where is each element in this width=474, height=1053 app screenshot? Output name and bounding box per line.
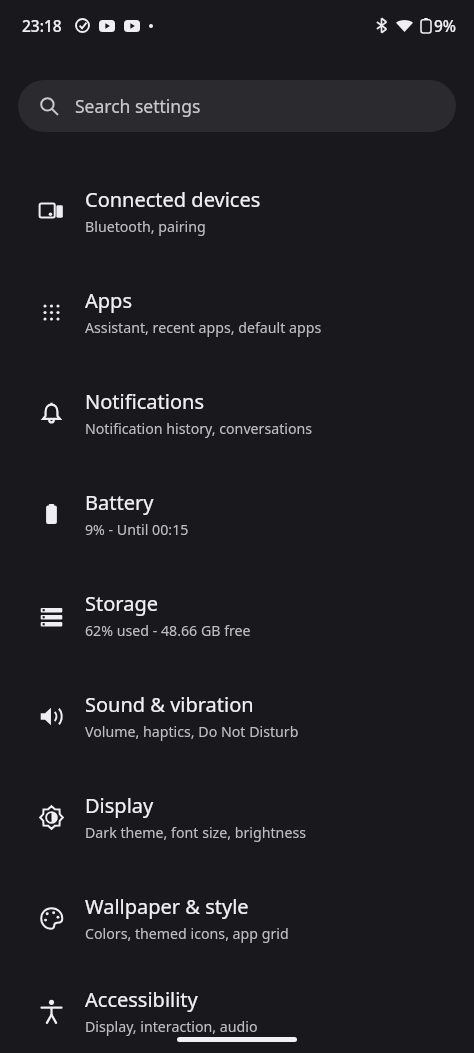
staticText: Battery <box>85 489 154 516</box>
staticText: Wallpaper & style <box>85 893 249 920</box>
other: Home gesture <box>177 1037 297 1042</box>
staticText: Notifications <box>85 388 204 415</box>
staticText: Display <box>85 792 154 819</box>
staticText: 23:18 <box>22 15 62 36</box>
staticText: Assistant, recent apps, default apps <box>85 318 322 337</box>
staticText: Bluetooth, pairing <box>85 217 206 236</box>
button[interactable]: Connected devices <box>0 160 474 261</box>
staticText: Colors, themed icons, app grid <box>85 924 289 943</box>
staticText: Display, interaction, audio <box>85 1017 258 1036</box>
staticText: Volume, haptics, Do Not Disturb <box>85 722 299 741</box>
staticText: Storage <box>85 590 158 617</box>
staticText: Notification history, conversations <box>85 419 313 438</box>
button[interactable]: Search settings <box>18 80 456 132</box>
button[interactable]: Storage <box>0 564 474 665</box>
button[interactable]: Accessibility <box>0 968 474 1053</box>
button[interactable]: Wallpaper & style <box>0 867 474 968</box>
button[interactable]: Sound & vibration <box>0 665 474 766</box>
staticText: Connected devices <box>85 186 261 213</box>
staticText: Search settings <box>75 94 201 118</box>
button[interactable]: Apps <box>0 261 474 362</box>
staticText: Apps <box>85 287 132 314</box>
staticText: 9% - Until 00:15 <box>85 520 189 539</box>
button[interactable]: Battery <box>0 463 474 564</box>
staticText: Sound & vibration <box>85 691 254 718</box>
staticText: Accessibility <box>85 986 198 1013</box>
staticText: 62% used - 48.66 GB free <box>85 621 251 640</box>
button[interactable]: Display <box>0 766 474 867</box>
staticText: Dark theme, font size, brightness <box>85 823 306 842</box>
button[interactable]: Notifications <box>0 362 474 463</box>
staticText: 9% <box>434 15 457 36</box>
